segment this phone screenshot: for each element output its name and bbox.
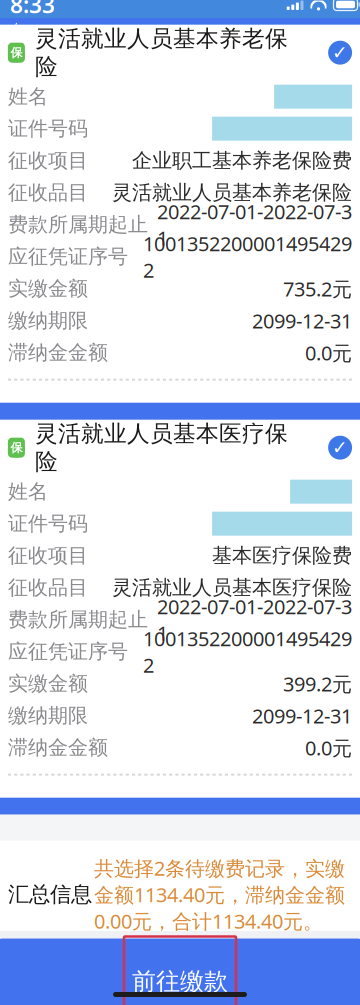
staticText: 10013522000014954292 — [143, 625, 352, 678]
staticText: 0.0元 — [305, 339, 352, 366]
staticText: 费款所属期起止 — [8, 212, 148, 237]
staticText: 征收品目 — [8, 180, 88, 205]
button[interactable]: 前往缴款 — [0, 938, 360, 1005]
staticText: 399.2元 — [283, 670, 352, 697]
staticText: 姓名 — [8, 84, 48, 109]
staticText: 汇总信息 — [8, 881, 92, 908]
staticText: 征收品目 — [8, 575, 88, 600]
staticText: 基本医疗保险费 — [212, 543, 352, 568]
staticText: 0.0元 — [305, 734, 352, 761]
staticText: 〈 — [0, 18, 21, 56]
staticText: ✓ — [332, 437, 348, 458]
staticText: 社保费申报缴纳 — [96, 22, 264, 52]
staticText: 735.2元 — [283, 275, 352, 302]
staticText: 前往缴款 — [132, 967, 228, 996]
staticText: 姓名 — [8, 479, 48, 504]
staticText: 实缴金额 — [8, 276, 88, 301]
button[interactable]: 返回 — [0, 17, 28, 57]
staticText: 2099-12-31 — [252, 702, 352, 729]
staticText: 征收项目 — [8, 543, 88, 568]
staticText: 征收项目 — [8, 148, 88, 173]
staticText: 证件号码 — [8, 116, 88, 141]
staticText: 应征凭证序号 — [8, 244, 128, 269]
staticText: 缴纳期限 — [8, 308, 88, 333]
staticText: 8:33 — [10, 0, 55, 19]
staticText: 灵活就业人员基本养老保险 — [112, 180, 352, 205]
staticText: 实缴金额 — [8, 671, 88, 696]
staticText: 缴纳期限 — [8, 703, 88, 728]
staticText: 滞纳金金额 — [8, 340, 108, 365]
staticText: 企业职工基本养老保险费 — [132, 148, 352, 173]
staticText: 灵活就业人员基本医疗保险 — [112, 575, 352, 600]
staticText: 费款所属期起止 — [8, 607, 148, 632]
staticText: 灵活就业人员基本养老保险 — [35, 25, 288, 80]
staticText: 应征凭证序号 — [8, 639, 128, 664]
staticText: 共选择2条待缴费记录，实缴金额1134.40元，滞纳金金额0.00元，合计113… — [94, 855, 345, 934]
staticText: 滞纳金金额 — [8, 735, 108, 760]
staticText: 保 — [10, 440, 22, 455]
staticText: 2099-12-31 — [252, 307, 352, 334]
staticText: ✓ — [332, 42, 348, 63]
staticText: 2022-07-01-2022-07-31 — [157, 198, 352, 251]
staticText: 证件号码 — [8, 511, 88, 536]
staticText: 灵活就业人员基本医疗保险 — [35, 420, 288, 475]
staticText: 2022-07-01-2022-07-31 — [157, 593, 352, 646]
staticText: 保 — [10, 45, 22, 60]
staticText: 10013522000014954292 — [143, 230, 352, 283]
